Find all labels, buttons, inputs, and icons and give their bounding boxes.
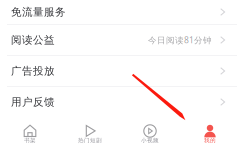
staticText: 广告投放 (11, 64, 55, 78)
button[interactable]: 用户反馈 (0, 87, 240, 117)
staticText: 今日阅读81分钟 (148, 34, 212, 46)
staticText: 用户反馈 (11, 95, 55, 109)
button[interactable]: 热门短剧 (60, 119, 120, 144)
staticText: 书架 (24, 137, 36, 144)
button[interactable]: 广告投放 (0, 56, 240, 86)
staticText: 免流量服务 (11, 5, 66, 19)
button[interactable]: 免流量服务 (0, 0, 240, 24)
button[interactable]: 我的 (180, 119, 240, 144)
button[interactable]: 小视频 (120, 119, 180, 144)
button[interactable]: 阅读公益 (0, 25, 240, 55)
staticText: 我的 (204, 137, 216, 144)
staticText: 阅读公益 (11, 33, 55, 47)
staticText: 热门短剧 (78, 137, 102, 144)
staticText: 小视频 (141, 137, 159, 144)
button[interactable]: 书架 (0, 119, 60, 144)
